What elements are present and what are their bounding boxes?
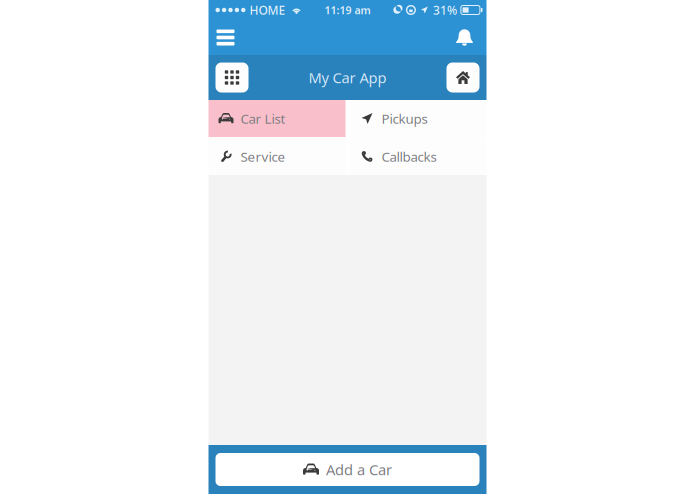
staticText: HOME [249, 2, 285, 18]
staticText: My Car App [308, 68, 386, 87]
button[interactable]: Pickups [349, 100, 486, 137]
button[interactable]: Home [446, 62, 479, 92]
staticText: Add a Car [326, 460, 392, 479]
button[interactable]: Callbacks [349, 138, 486, 175]
staticText: Service [240, 148, 285, 165]
button[interactable]: All apps [215, 62, 248, 92]
button[interactable]: Car List [208, 100, 345, 137]
button[interactable]: Menu [212, 21, 238, 54]
button[interactable]: Notifications [451, 21, 477, 54]
staticText: 11:19 am [324, 3, 370, 17]
staticText: Car List [240, 110, 285, 127]
staticText: 31% [433, 2, 457, 18]
staticText: Pickups [381, 110, 427, 127]
staticText: Callbacks [381, 148, 436, 165]
button[interactable]: Service [208, 138, 345, 175]
button[interactable]: Add a Car [215, 453, 479, 486]
